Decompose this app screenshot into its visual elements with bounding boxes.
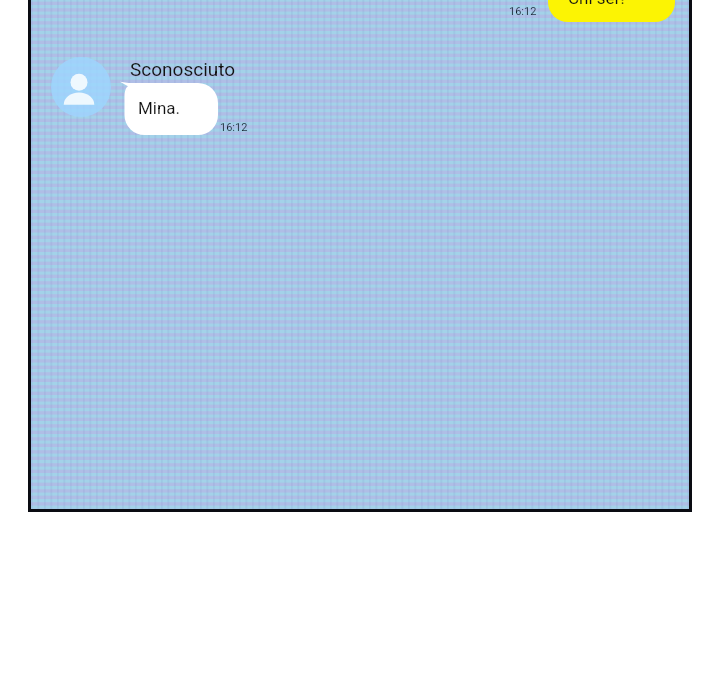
staticText: 16:12	[220, 121, 248, 134]
staticText: Mina.	[138, 98, 181, 118]
staticText: Sconosciuto	[130, 58, 236, 80]
staticText: 16:12	[509, 5, 537, 18]
button[interactable]: Chi sei?	[548, 0, 675, 22]
button[interactable]: Mina.	[118, 81, 218, 135]
staticText: Chi sei?	[568, 0, 627, 8]
button[interactable]: Contact avatar	[51, 57, 111, 117]
